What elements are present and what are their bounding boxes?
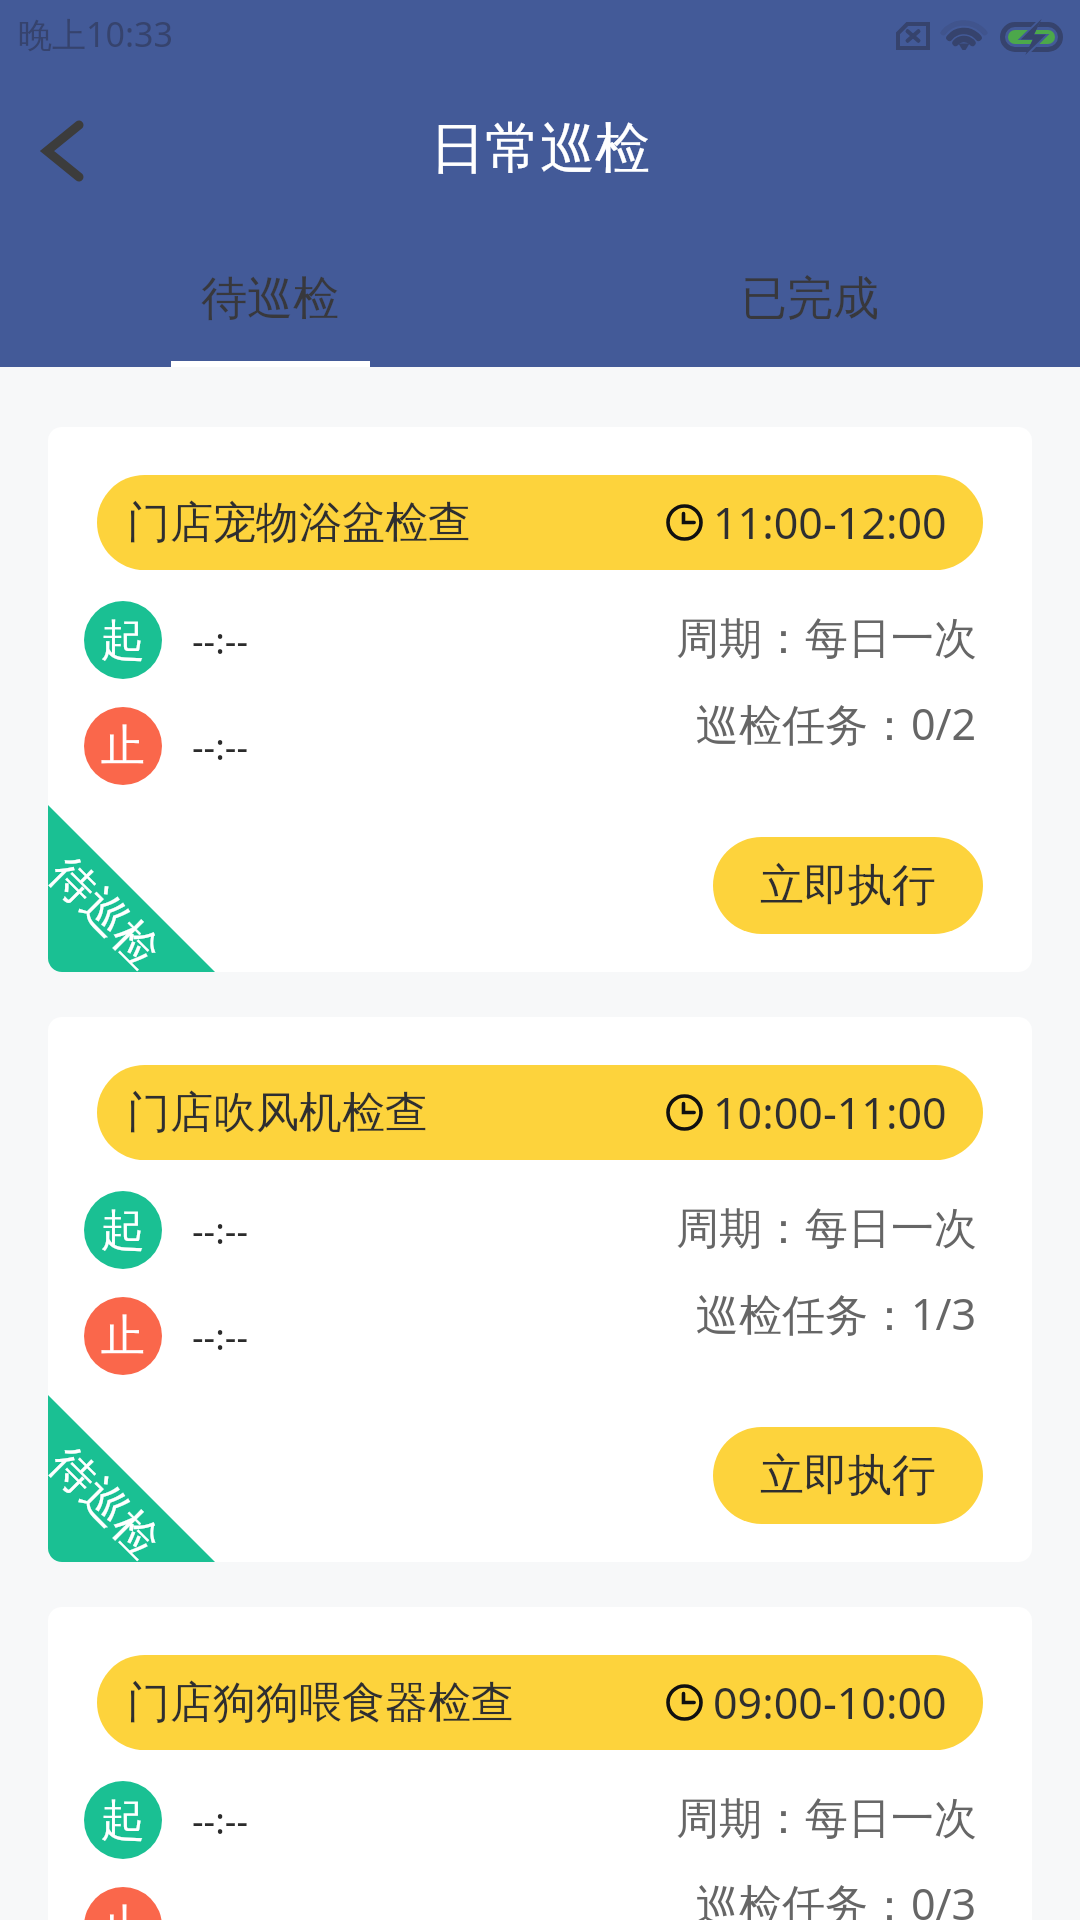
staticText: 已完成 [741, 270, 879, 328]
staticText: 周期：每日一次 [676, 612, 977, 666]
staticText: 止 [101, 1899, 145, 1920]
staticText: 11:00-12:00 [713, 493, 947, 552]
staticText: 门店吹风机检查 [127, 1086, 428, 1140]
staticText: 巡检任务：1/3 [696, 1284, 977, 1343]
staticText: 周期：每日一次 [676, 1202, 977, 1256]
staticText: 晚上10:33 [18, 11, 173, 57]
button[interactable]: 待巡检 [0, 240, 540, 367]
button[interactable]: Back [18, 106, 108, 196]
staticText: 立即执行 [760, 1448, 936, 1503]
staticText: 止 [101, 719, 145, 774]
staticText: 待巡检 [48, 847, 171, 972]
button[interactable]: 立即执行 [713, 837, 983, 934]
staticText: 起 [101, 613, 145, 668]
staticText: 巡检任务：0/2 [696, 694, 977, 753]
button[interactable]: 待巡检 [48, 1017, 1032, 1562]
staticText: 10:00-11:00 [713, 1083, 947, 1142]
staticText: 09:00-10:00 [713, 1673, 947, 1732]
staticText: --:-- [192, 616, 249, 665]
button[interactable]: 待巡检 [48, 427, 1032, 972]
button[interactable]: 立即执行 [713, 1427, 983, 1524]
button[interactable]: 待巡检 [48, 1607, 1032, 1920]
staticText: 待巡检 [48, 1437, 171, 1562]
staticText: 门店狗狗喂食器检查 [127, 1676, 514, 1730]
staticText: 止 [101, 1309, 145, 1364]
staticText: --:-- [192, 1312, 249, 1361]
staticText: 门店宠物浴盆检查 [127, 496, 471, 550]
staticText: 巡检任务：0/3 [696, 1874, 977, 1920]
staticText: --:-- [192, 722, 249, 771]
staticText: --:-- [192, 1796, 249, 1845]
staticText: 待巡检 [201, 270, 339, 328]
staticText: 日常巡检 [0, 114, 1080, 183]
staticText: 起 [101, 1203, 145, 1258]
staticText: --:-- [192, 1206, 249, 1255]
staticText: 起 [101, 1793, 145, 1848]
staticText: 立即执行 [760, 858, 936, 913]
button[interactable]: 已完成 [540, 240, 1080, 367]
staticText: 周期：每日一次 [676, 1792, 977, 1846]
